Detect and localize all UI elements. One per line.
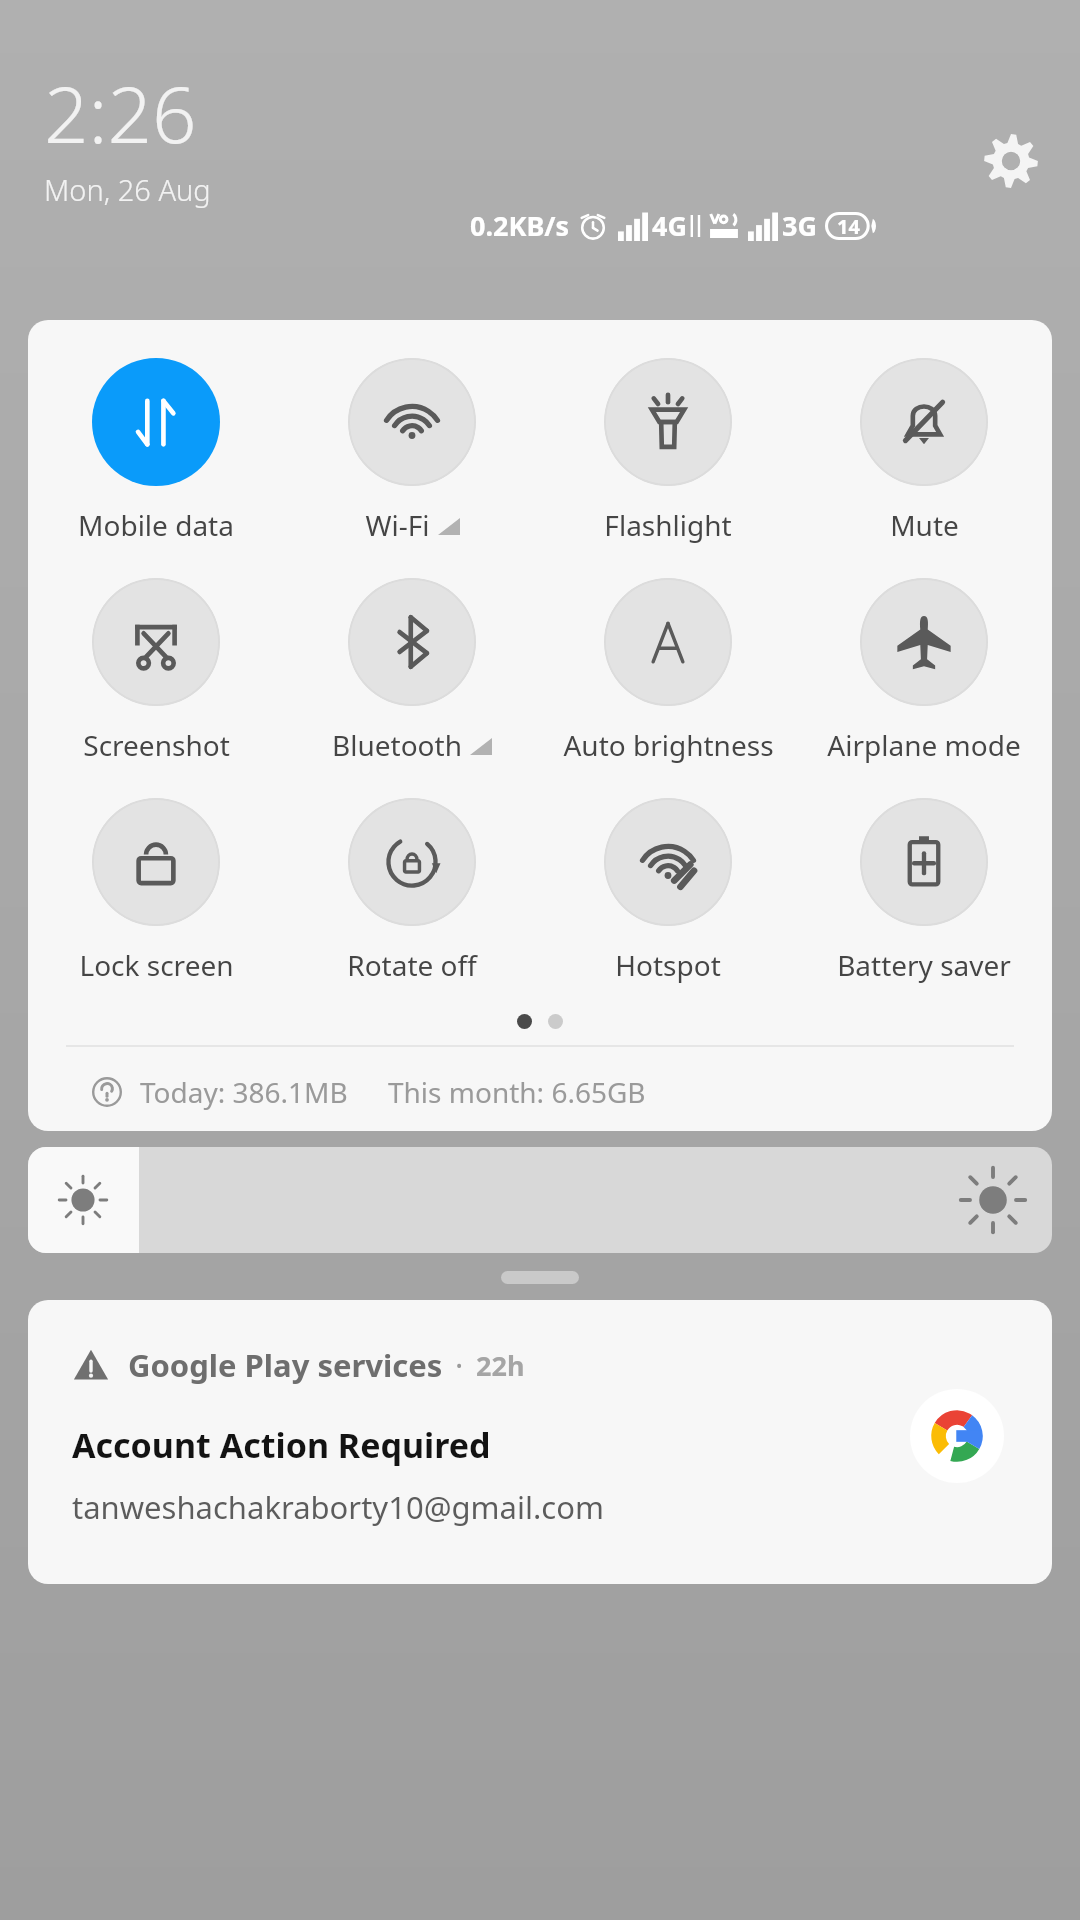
staticText: Battery saver [837,946,1011,984]
button[interactable]: Mute [796,358,1052,544]
button[interactable]: Flashlight [540,358,796,544]
staticText: Lock screen [79,946,234,984]
staticText: tanweshachakraborty10@gmail.com [72,1486,604,1528]
staticText: 14 [837,213,860,240]
staticText: 0.2KB/s [470,207,570,244]
button[interactable]: Airplane mode [796,578,1052,764]
staticText: · [455,1344,464,1386]
staticText: Mute [890,506,959,544]
button[interactable]: Lock screen [28,798,284,984]
button[interactable]: Mobile data [28,358,284,544]
staticText: Today: 386.1MB [140,1073,348,1111]
staticText: Wi-Fi [365,506,430,544]
button[interactable]: Today: 386.1MB [28,1073,1052,1111]
staticText: Account Action Required [72,1422,491,1468]
button[interactable]: Screenshot [28,578,284,764]
staticText: Airplane mode [827,726,1021,764]
staticText: Mon, 26 Aug [44,170,211,209]
button[interactable]: Wi-Fi [284,358,540,544]
staticText: Bluetooth [332,726,462,764]
button[interactable]: Auto brightness [540,578,796,764]
staticText: Flashlight [604,506,732,544]
staticText: This month: 6.65GB [388,1073,646,1111]
button[interactable]: Battery saver [796,798,1052,984]
staticText: Rotate off [347,946,477,984]
staticText: Mobile data [78,506,234,544]
button[interactable]: Settings [978,128,1044,194]
staticText: 2:26 [44,60,197,166]
staticText: Screenshot [83,726,230,764]
staticText: 3G [782,207,817,244]
button[interactable]: Rotate off [284,798,540,984]
button[interactable]: Brightness [28,1147,1052,1253]
staticText: Auto brightness [563,726,774,764]
staticText: 4G [652,207,687,244]
button[interactable]: Bluetooth [284,578,540,764]
staticText: Hotspot [615,946,721,984]
button[interactable]: Hotspot [540,798,796,984]
staticText: Google Play services [128,1344,443,1386]
button[interactable]: Google Play services [28,1300,1052,1584]
staticText: 22h [476,1347,525,1384]
